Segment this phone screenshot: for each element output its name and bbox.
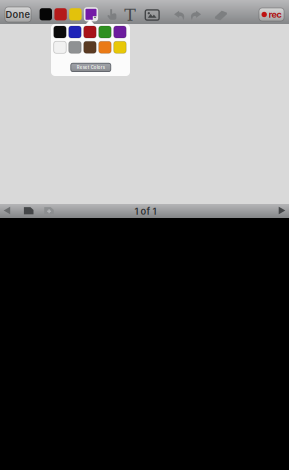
button[interactable]: Add page	[42, 204, 56, 217]
staticText: Reset Colors	[77, 65, 105, 70]
staticText: 1 of 1	[134, 206, 156, 217]
button[interactable]: Done	[5, 7, 31, 22]
button[interactable]: Orange	[99, 41, 111, 53]
button[interactable]: Insert picture	[142, 6, 162, 24]
button[interactable]: Yellow	[68, 7, 83, 21]
staticText: T	[124, 5, 136, 25]
button[interactable]: Red	[84, 26, 96, 38]
button[interactable]: Undo	[170, 7, 190, 25]
button[interactable]: White	[54, 41, 66, 53]
button[interactable]: Select	[102, 6, 122, 24]
button[interactable]: Erase	[211, 7, 231, 25]
button[interactable]: Record	[259, 8, 284, 21]
button[interactable]: Yellow	[114, 41, 126, 53]
staticText: Done	[5, 9, 30, 20]
button[interactable]: Blue	[69, 26, 81, 38]
button[interactable]: Reset Colors	[71, 63, 111, 72]
staticText: rec	[268, 9, 281, 20]
button[interactable]: Purple	[114, 26, 126, 38]
button[interactable]: Red	[53, 7, 68, 21]
button[interactable]: Green	[99, 26, 111, 38]
button[interactable]: Black	[54, 26, 66, 38]
button[interactable]: Next page	[275, 204, 289, 217]
button[interactable]: Previous page	[0, 204, 14, 217]
button[interactable]: Gray	[69, 41, 81, 53]
button[interactable]: Brown	[84, 41, 96, 53]
button[interactable]: Black	[38, 7, 53, 21]
button[interactable]: Redo	[185, 7, 205, 25]
button[interactable]: Text	[120, 6, 140, 24]
button[interactable]: Pages	[22, 204, 36, 217]
button[interactable]: Purple, selected	[84, 7, 98, 21]
